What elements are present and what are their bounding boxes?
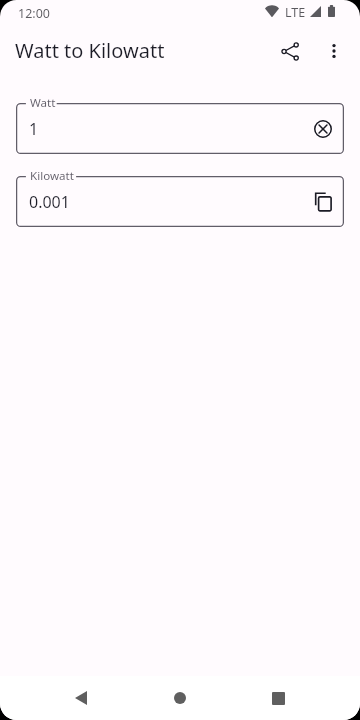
button[interactable]: Clear: [299, 105, 347, 153]
staticText: 1: [29, 118, 39, 140]
button[interactable]: More options: [310, 27, 358, 75]
button[interactable]: Copy: [299, 178, 347, 226]
staticText: Watt: [30, 95, 56, 111]
button[interactable]: Share: [266, 27, 314, 75]
staticText: LTE: [285, 4, 306, 21]
staticText: Watt to Kilowatt: [15, 37, 165, 64]
staticText: 12:00: [18, 5, 50, 22]
button[interactable]: Home: [156, 676, 204, 720]
staticText: Kilowatt: [30, 168, 74, 184]
button[interactable]: Recents: [254, 676, 302, 720]
staticText: 0.001: [29, 191, 70, 213]
button[interactable]: Back: [57, 676, 105, 720]
